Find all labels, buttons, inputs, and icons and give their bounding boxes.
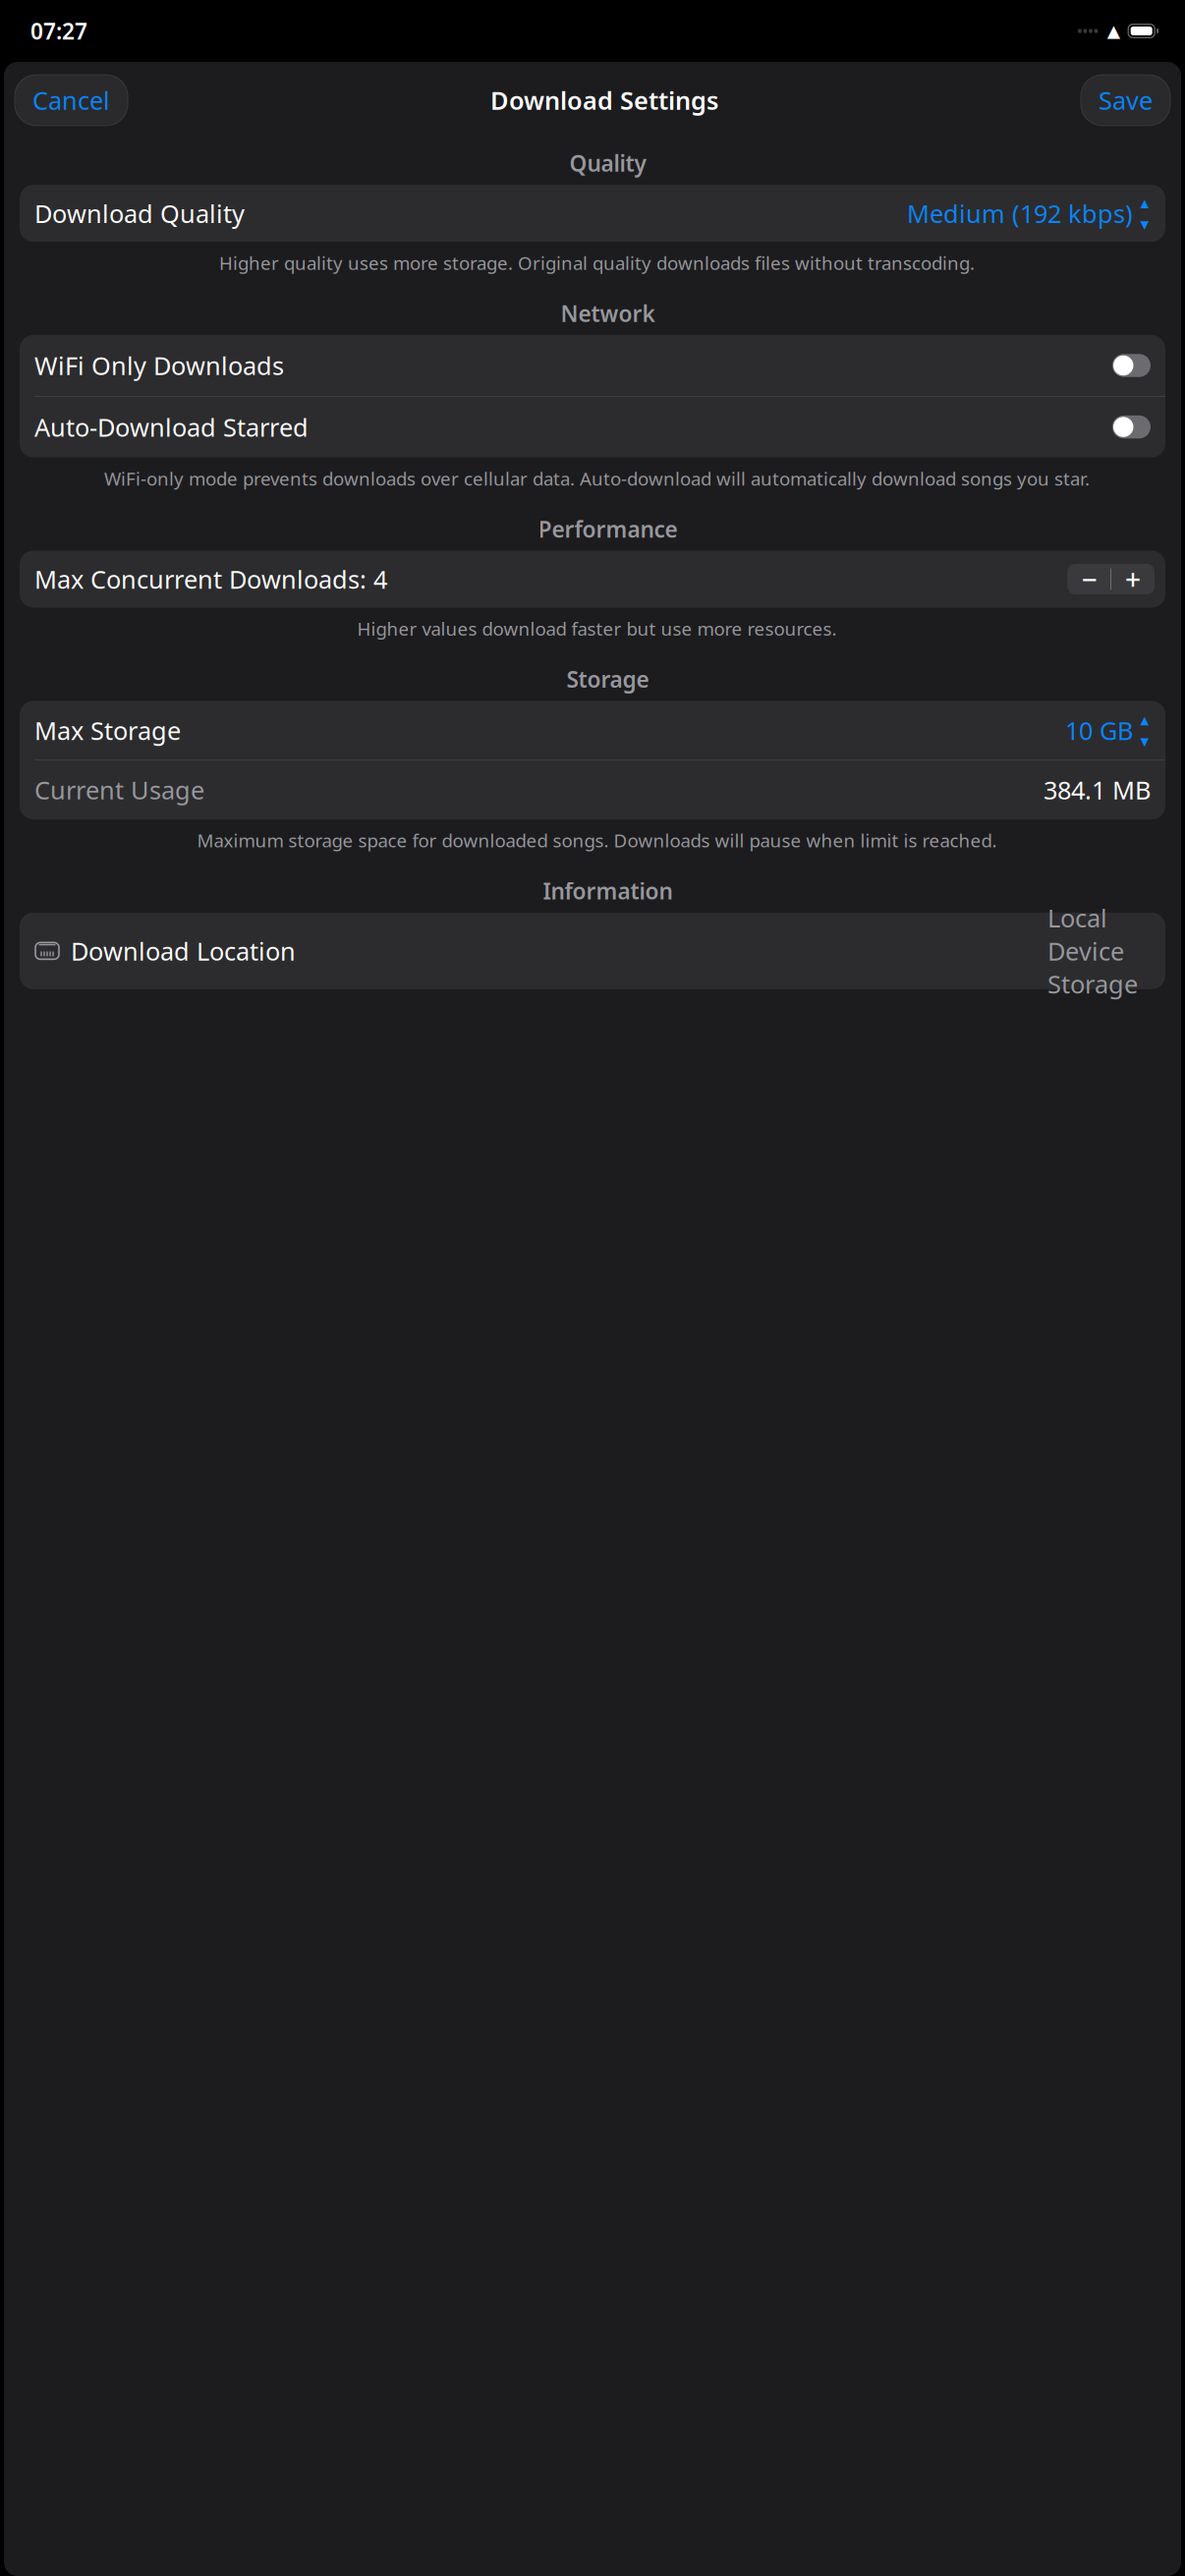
staticText: Cancel — [32, 84, 110, 117]
staticText: ▴ — [1140, 710, 1149, 729]
button[interactable]: Increase — [1111, 564, 1155, 594]
staticText: Max Concurrent Downloads: 4 — [34, 563, 387, 596]
staticText: Higher quality uses more storage. Origin… — [219, 251, 975, 275]
staticText: Download Settings — [490, 84, 718, 117]
staticText: Max Storage — [34, 714, 181, 747]
staticText: 384.1 MB — [1044, 773, 1151, 806]
staticText: ▾ — [1140, 214, 1149, 234]
staticText: Quality — [569, 148, 646, 178]
staticText: − — [1081, 561, 1097, 597]
button[interactable]: Download Quality — [20, 185, 1165, 242]
staticText: 10 GB — [1065, 714, 1133, 747]
staticText: Auto-Download Starred — [34, 410, 309, 443]
button[interactable]: WiFi Only Downloads — [20, 335, 1165, 396]
staticText: Download Quality — [34, 197, 245, 230]
staticText: Network — [561, 299, 655, 328]
button[interactable]: Auto-Download Starred — [20, 397, 1165, 457]
button[interactable]: Cancel — [15, 75, 128, 126]
staticText: Information — [543, 876, 673, 906]
staticText: 07:27 — [30, 16, 87, 46]
button[interactable]: Decrease — [1067, 564, 1111, 594]
staticText: Higher values download faster but use mo… — [357, 616, 837, 641]
staticText: WiFi-only mode prevents downloads over c… — [104, 466, 1090, 491]
button[interactable]: Max Storage — [20, 701, 1165, 760]
staticText: Local Device Storage — [1047, 901, 1138, 1000]
staticText: Download Location — [71, 934, 296, 967]
staticText: ▲ — [1107, 21, 1120, 41]
staticText: Current Usage — [34, 773, 204, 806]
staticText: Performance — [538, 514, 677, 544]
staticText: ▾ — [1140, 731, 1149, 751]
staticText: Maximum storage space for downloaded son… — [197, 828, 997, 853]
staticText: Save — [1099, 84, 1153, 117]
staticText: ▴ — [1140, 193, 1149, 212]
staticText: + — [1125, 561, 1141, 597]
staticText: WiFi Only Downloads — [34, 349, 284, 382]
staticText: Medium (192 kbps) — [907, 197, 1133, 230]
staticText: Storage — [566, 664, 649, 694]
button[interactable]: Save — [1081, 75, 1170, 126]
